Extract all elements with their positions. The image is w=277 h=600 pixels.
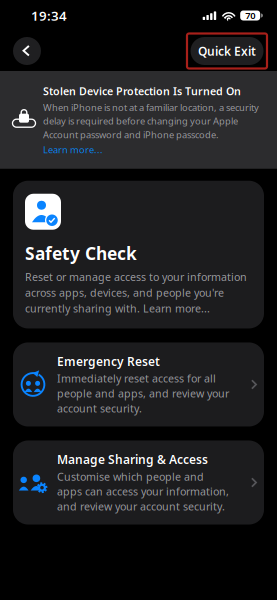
staticText: When iPhone is not at a familiar locatio… (43, 101, 259, 141)
staticText: Learn more... (43, 143, 103, 156)
staticText: 70 (245, 9, 255, 22)
staticText: Immediately reset access for all people … (57, 371, 229, 415)
staticText: Reset or manage access to your informati… (25, 270, 247, 315)
button[interactable]: Manage Sharing & Access (13, 440, 264, 524)
staticText: Manage Sharing & Access (57, 451, 208, 467)
staticText: Emergency Reset (57, 353, 160, 369)
staticText: Stolen Device Protection Is Turned On (43, 84, 241, 98)
button[interactable]: Learn more... (43, 141, 103, 156)
staticText: 19:34 (31, 7, 67, 24)
staticText: Quick Exit (198, 43, 256, 59)
button[interactable]: Safety Check (13, 181, 264, 328)
staticText: Customise which people and apps can acce… (57, 469, 229, 513)
button[interactable]: Quick Exit (187, 33, 267, 68)
staticText: Safety Check (25, 242, 137, 265)
button[interactable]: Back (13, 37, 41, 65)
button[interactable]: Emergency Reset (13, 342, 264, 426)
